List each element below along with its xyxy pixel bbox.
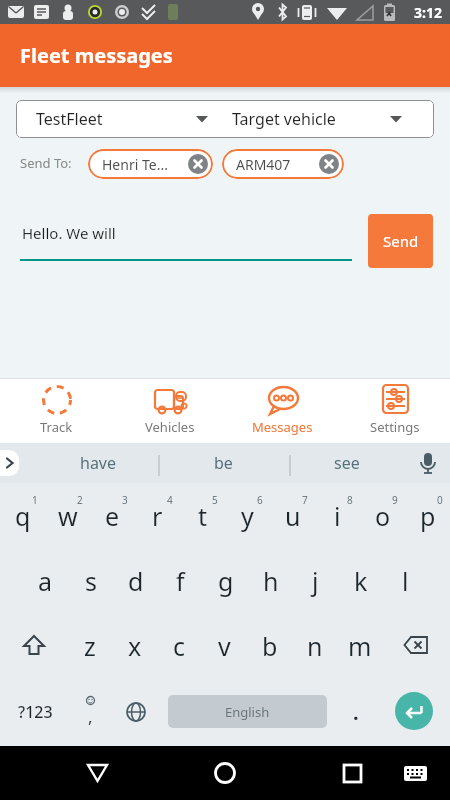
button[interactable]: ?123 [0, 678, 70, 746]
button[interactable]: l [383, 548, 428, 613]
staticText: r [152, 499, 163, 533]
staticText: p [420, 499, 436, 533]
staticText: Vehicles [145, 418, 195, 436]
staticText: e [105, 499, 120, 533]
button[interactable] [0, 746, 112, 800]
staticText: g [218, 564, 234, 598]
button[interactable]: x [112, 613, 157, 678]
staticText: t [198, 499, 208, 533]
button[interactable]: y [225, 483, 270, 548]
staticText: k [354, 564, 368, 598]
staticText: . [353, 699, 359, 726]
staticText: h [263, 564, 279, 598]
staticText: 9 [392, 493, 398, 507]
button[interactable]: c [157, 613, 202, 678]
staticText: Messages [252, 418, 313, 436]
staticText: v [218, 629, 231, 663]
staticText: Fleet messages [20, 42, 173, 69]
button[interactable]: TestFleet [16, 100, 225, 138]
button[interactable] [0, 450, 19, 476]
staticText: i [334, 499, 341, 533]
button[interactable]: m [337, 613, 382, 678]
staticText: Henri Te... [102, 155, 168, 174]
staticText: s [85, 564, 97, 598]
button[interactable]: v [202, 613, 247, 678]
staticText: be [214, 452, 233, 474]
button[interactable]: Track [0, 379, 113, 443]
staticText: 3:12 [414, 3, 442, 22]
button[interactable]: have [58, 443, 138, 483]
staticText: 3 [122, 493, 128, 507]
staticText: q [15, 499, 31, 533]
staticText: f [176, 564, 185, 598]
button[interactable]: i [315, 483, 360, 548]
staticText: English [225, 703, 270, 721]
button[interactable]: , [75, 678, 105, 746]
staticText: TestFleet [36, 108, 103, 130]
staticText: have [80, 452, 117, 474]
button[interactable]: g [203, 548, 248, 613]
button[interactable]: a [23, 548, 68, 613]
staticText: 6 [257, 493, 263, 507]
button[interactable]: h [248, 548, 293, 613]
staticText: w [58, 499, 78, 533]
button[interactable]: Fleet messages [0, 24, 450, 87]
staticText: ?123 [18, 701, 53, 723]
button[interactable]: j [293, 548, 338, 613]
staticText: Hello. We will [22, 223, 116, 243]
button[interactable]: o [360, 483, 405, 548]
button[interactable]: p [405, 483, 450, 548]
staticText: n [307, 629, 323, 663]
button[interactable]: q [0, 483, 45, 548]
button[interactable]: Henri Te... [88, 149, 213, 179]
button[interactable]: d [113, 548, 158, 613]
staticText: 4 [167, 493, 173, 507]
button[interactable]: b [247, 613, 292, 678]
button[interactable]: w [45, 483, 90, 548]
button[interactable]: Send [368, 214, 433, 268]
staticText: a [38, 564, 53, 598]
staticText: l [402, 564, 409, 598]
staticText: b [262, 629, 278, 663]
staticText: j [312, 564, 319, 598]
button[interactable] [382, 613, 450, 678]
staticText: o [375, 499, 391, 533]
staticText: 5 [212, 493, 218, 507]
button[interactable]: . [337, 678, 375, 746]
staticText: y [241, 499, 254, 533]
staticText: m [348, 629, 372, 663]
button[interactable]: Settings [339, 379, 450, 443]
staticText: 1 [32, 493, 38, 507]
button[interactable] [0, 613, 67, 678]
button[interactable] [112, 746, 224, 800]
button[interactable]: Target vehicle [225, 100, 434, 138]
button[interactable]: z [67, 613, 112, 678]
button[interactable]: r [135, 483, 180, 548]
staticText: x [128, 629, 142, 663]
button[interactable]: n [292, 613, 337, 678]
button[interactable]: s [68, 548, 113, 613]
button[interactable]: u [270, 483, 315, 548]
button[interactable]: be [183, 443, 263, 483]
button[interactable]: e [90, 483, 135, 548]
staticText: 7 [302, 493, 308, 507]
staticText: see [334, 452, 360, 474]
button[interactable]: ARM407 [222, 149, 344, 179]
staticText: Target vehicle [232, 108, 336, 130]
button[interactable]: see [307, 443, 387, 483]
button[interactable]: English [168, 695, 327, 728]
staticText: Settings [370, 418, 420, 436]
staticText: , [88, 705, 93, 728]
button[interactable] [337, 746, 450, 800]
button[interactable]: k [338, 548, 383, 613]
button[interactable] [224, 746, 337, 800]
button[interactable]: f [158, 548, 203, 613]
staticText: 2 [77, 493, 83, 507]
button[interactable]: Vehicles [113, 379, 226, 443]
staticText: 0 [437, 493, 443, 507]
button[interactable] [118, 678, 154, 746]
button[interactable]: Messages [226, 379, 339, 443]
staticText: c [173, 629, 186, 663]
button[interactable]: t [180, 483, 225, 548]
button[interactable] [395, 692, 433, 730]
